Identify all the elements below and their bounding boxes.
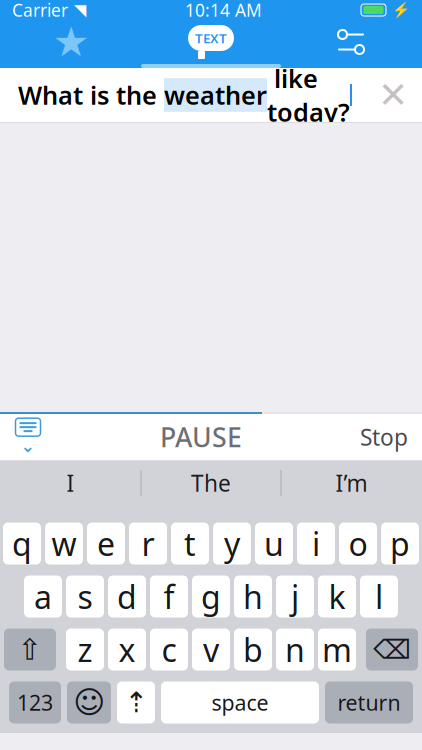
staticText: p [390,522,410,565]
button[interactable]: e [87,522,125,564]
staticText: Stop [360,422,408,452]
staticText: ★ [52,18,89,65]
button[interactable]: Text [141,20,281,64]
staticText: TEXT [195,29,227,47]
staticText: q [12,522,32,565]
button[interactable]: s [66,575,104,617]
button[interactable]: ⌫ [366,628,418,670]
staticText: v [203,628,219,671]
staticText: y [224,522,240,565]
button[interactable]: j [276,575,314,617]
staticText: like today? [267,61,350,129]
staticText: l [375,575,383,618]
button[interactable]: p [381,522,419,564]
button[interactable]: d [108,575,146,617]
button[interactable]: I [0,461,140,505]
button[interactable]: r [129,522,167,564]
button[interactable]: v [192,628,230,670]
staticText: g [201,575,221,618]
button[interactable]: q [3,522,41,564]
staticText: Carrier [12,0,68,21]
button[interactable]: Stop [346,414,422,460]
staticText: The [191,468,231,498]
button[interactable]: PAUSE [141,414,261,460]
staticText: ⚡ [392,2,410,18]
button[interactable]: t [171,522,209,564]
staticText: j [291,575,299,618]
staticText: k [328,575,345,618]
button[interactable]: I’m [281,461,421,505]
button[interactable]: g [192,575,230,617]
staticText: m [322,628,352,671]
staticText: What is the [18,78,164,112]
button[interactable]: Clear text [370,71,416,119]
staticText: 10:14 AM [185,0,262,21]
button[interactable]: b [234,628,272,670]
staticText: f [163,575,174,618]
button[interactable]: Dictation [117,681,155,723]
button[interactable]: Favorites [1,20,141,64]
staticText: a [34,575,52,618]
button[interactable]: c [150,628,188,670]
staticText: z [77,628,92,671]
staticText: ⇧ [17,633,42,666]
button[interactable]: l [360,575,398,617]
button[interactable]: w [45,522,83,564]
button[interactable]: Hide keyboard [0,414,56,460]
staticText: ⇡ [124,687,147,718]
button[interactable]: space [161,681,319,723]
staticText: weather [164,78,267,112]
staticText: I [66,468,74,498]
staticText: u [264,522,284,565]
button[interactable]: 123 [9,681,61,723]
staticText: ☺ [73,685,105,720]
staticText: space [211,688,268,717]
staticText: 123 [17,688,53,717]
button[interactable]: x [108,628,146,670]
button[interactable]: n [276,628,314,670]
staticText: return [337,688,400,717]
staticText: r [141,522,154,565]
staticText: ⌫ [373,634,411,665]
staticText: b [243,628,263,671]
button[interactable]: return [325,681,413,723]
staticText: n [285,628,305,671]
button[interactable]: u [255,522,293,564]
button[interactable]: m [318,628,356,670]
button[interactable]: f [150,575,188,617]
staticText: i [312,522,320,565]
button[interactable]: o [339,522,377,564]
staticText: x [118,628,135,671]
button[interactable]: ☺ [67,681,111,723]
button[interactable]: h [234,575,272,617]
button[interactable]: k [318,575,356,617]
staticText: ✕ [378,75,408,115]
staticText: I’m [335,468,367,498]
staticText: c [161,628,176,671]
button[interactable]: The [141,461,280,505]
staticText: o [348,522,367,565]
button[interactable]: y [213,522,251,564]
staticText: ◥ [74,1,86,19]
staticText: w [51,522,76,565]
staticText: e [97,522,115,565]
staticText: h [243,575,263,618]
staticText: d [117,575,137,618]
staticText: PAUSE [160,419,242,455]
button[interactable]: ⇧ [4,628,56,670]
staticText: ⌄ [20,436,35,456]
button[interactable]: Settings [281,20,421,64]
button[interactable]: a [24,575,62,617]
button[interactable]: i [297,522,335,564]
staticText: s [77,575,92,618]
button[interactable]: z [66,628,104,670]
staticText: t [184,522,196,565]
